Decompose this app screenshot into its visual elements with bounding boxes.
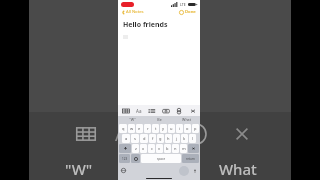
- button[interactable]: Shift: [119, 144, 131, 153]
- button[interactable]: w: [128, 124, 135, 133]
- staticText: All Notes: [126, 9, 144, 15]
- staticText: b: [166, 146, 169, 151]
- staticText: p: [194, 126, 197, 131]
- button[interactable]: v: [156, 144, 163, 153]
- staticText: l: [192, 136, 194, 141]
- button[interactable]: space: [141, 154, 181, 163]
- button[interactable]: Globe: [121, 168, 126, 173]
- button[interactable]: x: [140, 144, 147, 153]
- button[interactable]: z: [132, 144, 139, 153]
- button[interactable]: l: [189, 134, 196, 143]
- staticText: e: [138, 126, 141, 131]
- button[interactable]: Be: [146, 116, 173, 123]
- button[interactable]: e: [136, 124, 143, 133]
- staticText: return: [186, 157, 195, 161]
- staticText: j: [176, 136, 178, 141]
- button[interactable]: p: [192, 124, 199, 133]
- button[interactable]: d: [140, 134, 148, 143]
- staticText: h: [167, 136, 170, 141]
- button[interactable]: return: [182, 154, 199, 163]
- button[interactable]: h: [165, 134, 172, 143]
- staticText: i: [179, 126, 181, 131]
- staticText: a: [125, 136, 128, 141]
- staticText: 123: [122, 157, 128, 161]
- staticText: n: [174, 146, 177, 151]
- button[interactable]: j: [173, 134, 180, 143]
- button[interactable]: Emoji: [131, 154, 140, 163]
- button[interactable]: What: [173, 116, 200, 123]
- button[interactable]: k: [181, 134, 188, 143]
- staticText: "W": [65, 159, 93, 179]
- button[interactable]: r: [144, 124, 151, 133]
- button[interactable]: Delete: [188, 144, 199, 153]
- staticText: c: [151, 146, 153, 151]
- button[interactable]: Dictate: [192, 168, 197, 173]
- staticText: A: [115, 121, 128, 147]
- other: Compose: [179, 10, 184, 15]
- staticText: What: [219, 159, 257, 179]
- staticText: k: [183, 136, 186, 141]
- button[interactable]: b: [164, 144, 171, 153]
- staticText: What: [182, 117, 191, 122]
- button[interactable]: s: [131, 134, 139, 143]
- button[interactable]: Camera: [161, 106, 170, 115]
- staticText: space: [157, 157, 166, 161]
- button[interactable]: Close: [188, 106, 197, 115]
- staticText: s: [134, 136, 136, 141]
- button[interactable]: Compose: [178, 9, 197, 15]
- button[interactable]: y: [160, 124, 167, 133]
- button[interactable]: "W": [118, 116, 146, 123]
- staticText: v: [158, 146, 161, 151]
- staticText: Hello friends: [123, 20, 168, 30]
- button[interactable]: Trackpad: [179, 166, 189, 176]
- button[interactable]: u: [168, 124, 175, 133]
- staticText: Be: [157, 117, 162, 122]
- staticText: LTE: [180, 2, 186, 7]
- staticText: g: [159, 136, 162, 141]
- button[interactable]: q: [119, 124, 127, 133]
- button[interactable]: Markup: [174, 106, 183, 115]
- staticText: z: [135, 146, 137, 151]
- staticText: x: [142, 146, 145, 151]
- button[interactable]: a: [122, 134, 130, 143]
- staticText: w: [130, 126, 134, 131]
- button[interactable]: f: [149, 134, 156, 143]
- button[interactable]: All Notes: [121, 9, 145, 15]
- staticText: "W": [129, 117, 136, 122]
- staticText: o: [186, 126, 189, 131]
- staticText: y: [162, 126, 165, 131]
- button[interactable]: t: [152, 124, 159, 133]
- staticText: r: [147, 126, 149, 131]
- button[interactable]: Table: [121, 106, 130, 115]
- button[interactable]: g: [157, 134, 164, 143]
- button[interactable]: n: [172, 144, 179, 153]
- staticText: u: [170, 126, 173, 131]
- staticText: f: [152, 136, 154, 141]
- staticText: q: [122, 126, 125, 131]
- button[interactable]: m: [180, 144, 187, 153]
- button[interactable]: 123: [119, 154, 130, 163]
- button[interactable]: Aa: [135, 107, 143, 115]
- button[interactable]: c: [148, 144, 155, 153]
- button[interactable]: o: [184, 124, 191, 133]
- staticText: Aa: [136, 108, 142, 114]
- staticText: m: [182, 146, 186, 151]
- staticText: Done: [185, 9, 196, 15]
- staticText: t: [155, 126, 157, 131]
- staticText: d: [143, 136, 146, 141]
- button[interactable]: i: [176, 124, 183, 133]
- button[interactable]: List: [147, 106, 156, 115]
